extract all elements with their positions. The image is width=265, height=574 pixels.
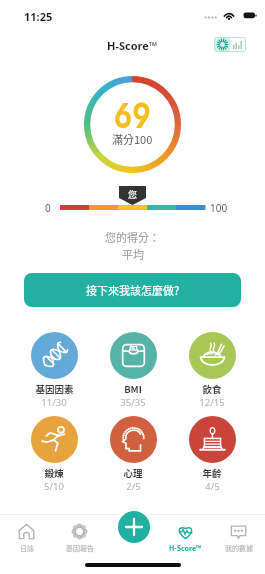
staticText: 接下來我該怎麼做?	[86, 282, 180, 298]
button[interactable]: 基因因素	[19, 332, 89, 409]
staticText: BMI	[124, 382, 142, 396]
staticText: 4/5	[205, 480, 220, 493]
staticText: 滿分100	[112, 131, 153, 147]
button[interactable]: 年齡	[177, 416, 247, 493]
button[interactable]: H-Score™	[159, 514, 212, 544]
button[interactable]: 心理	[98, 416, 168, 493]
staticText: 12/15	[199, 396, 225, 409]
button[interactable]: 飲食	[177, 332, 247, 409]
staticText: 2/5	[126, 480, 141, 493]
button[interactable]: 鍛煉	[19, 416, 89, 493]
staticText: 0	[45, 201, 51, 215]
staticText: 年齡	[202, 466, 222, 480]
staticText: 心理	[123, 466, 143, 480]
button[interactable]: 接下來我該怎麼做?	[24, 273, 241, 307]
button[interactable]: 基因報告	[53, 514, 106, 544]
staticText: 69	[114, 89, 151, 141]
staticText: 您	[128, 188, 138, 201]
staticText: 35/35	[120, 396, 146, 409]
staticText: H-Score™	[107, 38, 158, 53]
button[interactable]: Switch view	[214, 37, 246, 52]
staticText: 基因因素	[35, 382, 74, 396]
staticText: 基因報告	[66, 543, 94, 553]
button[interactable]: BMI	[98, 332, 168, 409]
staticText: 平均	[122, 246, 144, 262]
button[interactable]: Add	[118, 511, 150, 543]
staticText: 11:25	[24, 9, 53, 24]
staticText: 鍛煉	[44, 466, 64, 480]
staticText: 100	[210, 201, 228, 215]
staticText: 5/10	[44, 480, 64, 493]
staticText: 您的得分：	[105, 229, 160, 245]
staticText: 我的數據	[225, 543, 253, 553]
staticText: 飲食	[202, 382, 222, 396]
staticText: H-Score™	[169, 543, 202, 553]
staticText: 日誌	[20, 543, 34, 553]
staticText: 11/30	[41, 396, 67, 409]
button[interactable]: 日誌	[0, 514, 53, 544]
button[interactable]: 我的數據	[212, 514, 265, 544]
